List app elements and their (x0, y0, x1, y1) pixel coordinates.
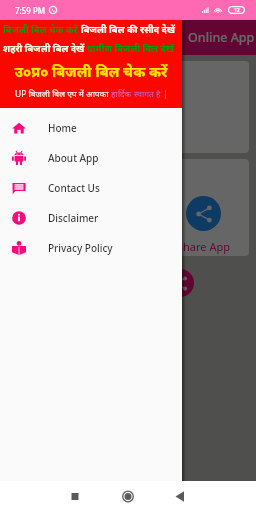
button[interactable]: Disclaimer (0, 203, 182, 233)
staticText: Rate App (23, 239, 70, 254)
staticText: बिजली बिल की रसीद देखें (81, 23, 176, 36)
button[interactable]: Rate App (7, 196, 86, 256)
staticText: बिजली बिल चेक करें (3, 23, 81, 36)
button[interactable]: Share App (164, 196, 242, 256)
button[interactable]: Rate App (7, 159, 249, 256)
staticText: Privacy Policy (48, 241, 113, 255)
staticText: शहरी बिजली बिल देखें (3, 42, 87, 55)
button[interactable]: Bill Receipt (89, 93, 171, 153)
button[interactable]: Home (0, 113, 182, 143)
staticText: About App (48, 151, 99, 165)
staticText: | (161, 88, 168, 100)
staticText: ग्रामीण बिजली बिल देखें (87, 42, 174, 55)
button[interactable]: About App (0, 143, 182, 173)
button[interactable]: Home (0, 20, 182, 482)
button[interactable]: Share (166, 269, 194, 297)
button[interactable]: Contact Us (0, 173, 182, 203)
staticText: 7:59 PM (15, 5, 46, 16)
staticText: Home (48, 121, 77, 135)
staticText: उ०प्र० बिजली बिल चेक करें (0, 61, 182, 81)
staticText: Disclaimer (48, 211, 99, 225)
staticText: 12 (234, 7, 240, 14)
button[interactable]: Advertisement (0, 20, 182, 108)
staticText: UP बिजली बिल एप में आपका (15, 88, 111, 100)
button[interactable]: Privacy Policy (0, 233, 182, 263)
button[interactable]: More Apps (86, 196, 164, 256)
button[interactable]: Open navigation drawer (8, 27, 30, 49)
button[interactable]: Check Bill (7, 93, 89, 153)
staticText: Share App (177, 239, 230, 254)
staticText: हार्दिक (111, 88, 134, 100)
button[interactable]: Check Bill (7, 61, 249, 153)
staticText: स्वागत है (134, 88, 161, 100)
staticText: Online App (188, 29, 255, 46)
staticText: Contact Us (48, 181, 100, 195)
staticText: More Apps (97, 239, 153, 254)
